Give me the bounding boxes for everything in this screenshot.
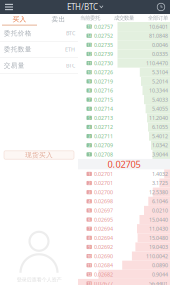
staticText: 12 [87,51,91,57]
staticText: 0.02714 [94,105,113,112]
staticText: 0.02695 [94,216,113,223]
staticText: 0.0335 [152,50,168,58]
staticText: 0.0210 [152,207,168,214]
staticText: 0.02694 [94,225,113,232]
staticText: 4 [88,199,90,204]
staticText: 0.02757 [94,23,113,30]
staticText: 10.3344 [149,87,168,94]
staticText: 11 [87,60,91,66]
staticText: 0.02726 [94,69,113,76]
staticText: 5.4033 [152,96,168,103]
staticText: 8 [88,235,90,240]
staticText: 0.02730 [94,59,113,67]
staticText: 9 [88,244,90,250]
staticText: 3 [88,133,90,139]
staticText: 成交数量 [114,15,134,21]
staticText: 0.02684 [94,262,113,269]
button[interactable]: 卖出 [39,14,78,25]
staticText: 3.9044 [152,151,168,158]
staticText: 0.02701 [94,170,113,178]
staticText: 15.0440 [149,216,168,223]
staticText: 全部订单 [148,15,168,21]
staticText: 2 [88,180,90,186]
staticText: 10.6401 [149,23,168,30]
staticText: 110.4470 [146,59,168,67]
staticText: 14 [87,33,91,38]
staticText: 0.02752 [94,32,113,39]
staticText: 0.02712 [94,123,113,131]
staticText: 11 [87,262,91,268]
staticText: 6.1046 [152,198,168,205]
staticText: ETH [65,46,75,53]
staticText: 8 [88,88,90,93]
staticText: 5 [88,115,90,120]
staticText: 10 [87,69,91,75]
staticText: 9 [88,79,90,84]
button[interactable]: Menu [0,0,18,14]
staticText: 5.4012 [152,132,168,140]
staticText: 3.1725 [152,179,168,187]
staticText: 6 [88,106,90,111]
staticText: 0.02711 [94,132,113,140]
staticText: 6 [88,217,90,222]
staticText: 11.0430 [149,225,168,232]
staticText: 13 [87,42,91,47]
staticText: 0.0890 [152,262,168,269]
staticText: 卖出 [51,15,65,24]
staticText: 0.02677 [94,280,113,285]
staticText: 登录后查看个人资产 [16,276,61,283]
staticText: ETH/BTC [67,2,98,12]
staticText: 当前委托 [80,15,100,21]
staticText: 0.02694 [94,234,113,241]
staticText: 3 [88,189,90,195]
staticText: 4 [88,124,90,130]
staticText: 6.1055 [152,123,168,131]
staticText: 0.02708 [94,151,113,158]
staticText: 0.02713 [94,114,113,121]
staticText: 0.02692 [94,243,113,251]
staticText: 0.0046 [152,41,168,48]
staticText: 0.02690 [94,252,113,260]
staticText: 12.5380 [149,188,168,196]
button[interactable]: 现货买入 [4,151,74,159]
staticText: 0.02719 [94,78,113,85]
staticText: 13 [87,281,91,285]
staticText: 0.02735 [94,41,113,48]
staticText: 5.4055 [152,105,168,112]
staticText: 0.02709 [94,142,113,149]
staticText: 15.0480 [149,234,168,241]
staticText: 1 [88,171,90,177]
staticText: 56.4401 [149,280,168,285]
button[interactable]: ETH/BTC [67,0,103,14]
staticText: 19.0403 [149,243,168,251]
staticText: 15 [87,24,91,29]
staticText: 委托数量 [4,45,32,54]
staticText: 委托价格 [4,29,32,37]
staticText: 0.02697 [94,207,113,214]
staticText: 7 [88,97,90,102]
staticText: 0.02705 [107,158,140,170]
staticText: 0.02701 [94,179,113,187]
staticText: 5.3104 [152,69,168,76]
staticText: 81.0848 [149,32,168,39]
button[interactable]: Order history [152,0,170,14]
staticText: 0.9044 [152,271,168,278]
staticText: 0.02700 [94,188,113,196]
staticText: 11.2040 [149,114,168,121]
staticText: 1 [88,152,90,157]
staticText: 7 [88,226,90,231]
staticText: 现货买入 [25,151,53,159]
staticText: 买入 [12,15,26,24]
staticText: 交易量 [4,61,25,70]
staticText: BTC [66,30,75,37]
staticText: 0.02682 [94,271,113,278]
button[interactable]: 买入 [0,14,39,25]
staticText: 0.02715 [94,96,113,103]
staticText: 5 [88,208,90,213]
staticText: 0.02716 [94,87,113,94]
staticText: 1.4032 [152,170,168,178]
staticText: BTC [66,62,75,69]
staticText: 12 [87,272,91,277]
staticText: 1.0342 [152,142,168,149]
staticText: 110.0042 [146,252,168,260]
